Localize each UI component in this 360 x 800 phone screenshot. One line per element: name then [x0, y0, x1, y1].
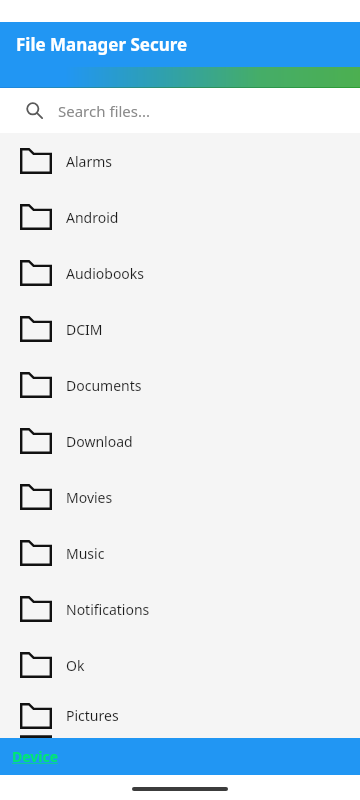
button[interactable]: Notifications [0, 581, 360, 637]
button[interactable]: Device [10, 743, 61, 770]
button[interactable]: Audiobooks [0, 245, 360, 301]
staticText: Android [66, 208, 119, 227]
staticText: Documents [66, 376, 142, 395]
staticText: DCIM [66, 320, 103, 339]
button[interactable]: Documents [0, 357, 360, 413]
staticText: File Manager Secure [16, 33, 188, 56]
staticText: Search files... [58, 101, 150, 121]
staticText: Notifications [66, 600, 150, 619]
staticText: Music [66, 544, 105, 563]
staticText: Alarms [66, 152, 112, 171]
button[interactable]: Movies [0, 469, 360, 525]
staticText: Movies [66, 488, 113, 507]
staticText: Pictures [66, 706, 119, 725]
button[interactable]: Ok [0, 637, 360, 693]
button[interactable]: File Manager Secure [0, 22, 360, 67]
staticText: Ok [66, 656, 85, 675]
button[interactable]: Download [0, 413, 360, 469]
button[interactable]: DCIM [0, 301, 360, 357]
staticText: Audiobooks [66, 264, 145, 283]
button[interactable]: Alarms [0, 133, 360, 189]
staticText: Device [12, 747, 59, 766]
button[interactable]: Search files... [0, 88, 360, 133]
button[interactable]: Pictures [0, 693, 360, 738]
button[interactable]: Music [0, 525, 360, 581]
staticText: Download [66, 432, 133, 451]
button[interactable]: Android [0, 189, 360, 245]
